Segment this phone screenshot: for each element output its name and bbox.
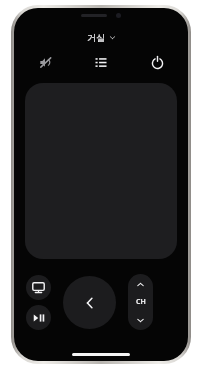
button[interactable]: 거실 [14, 30, 188, 45]
button[interactable]: Channel Down [128, 311, 153, 329]
button[interactable]: Channel [128, 294, 153, 310]
button[interactable]: Mute [34, 51, 56, 73]
button[interactable]: Menu [90, 51, 112, 73]
staticText: 거실 [87, 32, 105, 43]
staticText: CH [136, 297, 146, 307]
button[interactable]: Channel Up [128, 275, 153, 293]
button[interactable]: Power [146, 51, 168, 73]
button[interactable]: Play Pause [26, 305, 51, 330]
button[interactable]: TV App [26, 275, 51, 300]
button[interactable]: Back [63, 276, 116, 329]
